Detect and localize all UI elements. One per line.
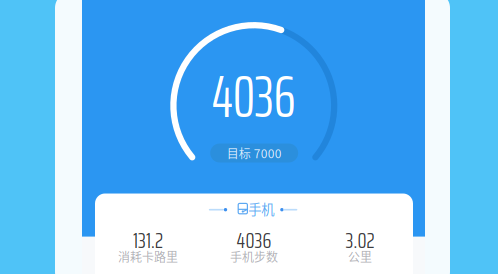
staticText: 目标 7000 [227, 144, 282, 162]
staticText: 手机步数 [230, 248, 278, 265]
button[interactable]: 131.2 [95, 226, 201, 264]
staticText: 131.2 [133, 224, 163, 257]
button[interactable]: 4036 [201, 226, 307, 264]
button[interactable]: 3.02 [307, 226, 413, 264]
button[interactable]: 目标 7000 [210, 143, 298, 162]
staticText: 消耗卡路里 [118, 248, 178, 265]
staticText: 4036 [212, 50, 296, 143]
staticText: 公里 [348, 248, 372, 265]
staticText: 4036 [236, 224, 271, 257]
button[interactable]: 手机 [95, 193, 413, 225]
staticText: 手机 [248, 199, 274, 218]
staticText: 3.02 [345, 224, 374, 257]
